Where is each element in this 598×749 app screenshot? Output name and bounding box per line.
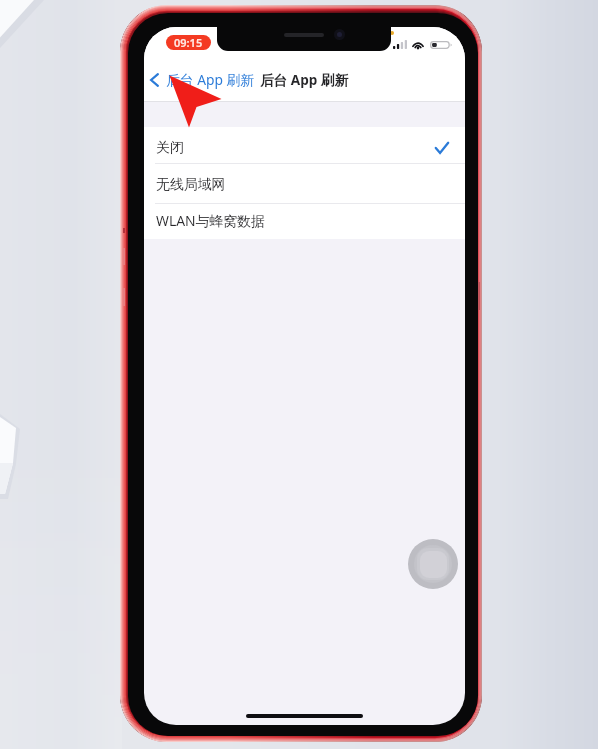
button[interactable]: 后台 App 刷新: [144, 70, 261, 89]
button[interactable]: 关闭: [144, 127, 465, 163]
staticText: 关闭: [156, 139, 184, 157]
staticText: WLAN与蜂窝数据: [156, 211, 266, 230]
button[interactable]: AssistiveTouch: [408, 539, 458, 589]
staticText: 后台 App 刷新: [166, 70, 255, 89]
button[interactable]: 无线局域网: [144, 164, 465, 203]
staticText: 09:15: [174, 35, 203, 50]
staticText: 后台 App 刷新: [260, 70, 349, 89]
button[interactable]: WLAN与蜂窝数据: [144, 204, 465, 239]
staticText: 无线局域网: [156, 176, 226, 194]
